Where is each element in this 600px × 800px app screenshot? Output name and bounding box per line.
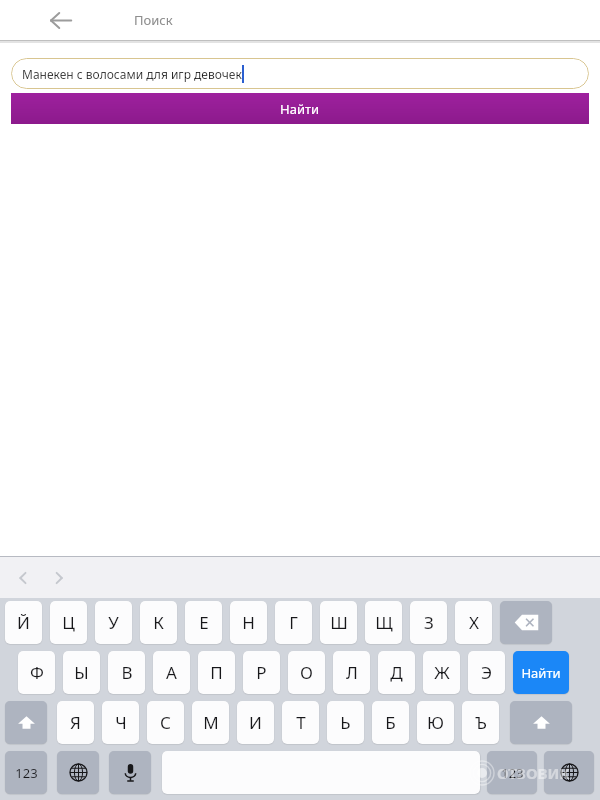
staticText: В xyxy=(121,661,133,684)
button[interactable]: Щ xyxy=(365,601,402,644)
button[interactable]: Ю xyxy=(417,701,454,744)
staticText: К xyxy=(153,611,164,634)
staticText: И xyxy=(249,711,262,734)
button[interactable]: Backspace xyxy=(500,601,552,644)
button[interactable]: Е xyxy=(185,601,222,644)
button[interactable]: Shift xyxy=(510,701,572,744)
button[interactable]: З xyxy=(410,601,447,644)
button[interactable]: Ф xyxy=(18,651,55,694)
button[interactable]: К xyxy=(140,601,177,644)
button[interactable]: О xyxy=(288,651,325,694)
staticText: Ы xyxy=(74,661,89,684)
button[interactable]: 123 xyxy=(5,751,47,794)
staticText: Ъ xyxy=(475,711,487,734)
button[interactable]: Р xyxy=(243,651,280,694)
staticText: Х xyxy=(469,611,479,634)
button[interactable]: В xyxy=(108,651,145,694)
button[interactable]: М xyxy=(192,701,229,744)
staticText: Э xyxy=(481,661,492,684)
staticText: Ц xyxy=(62,611,75,634)
button[interactable]: Ж xyxy=(423,651,460,694)
staticText: Д xyxy=(390,661,403,684)
button[interactable]: Г xyxy=(275,601,312,644)
staticText: П xyxy=(210,661,223,684)
staticText: Е xyxy=(199,611,209,634)
staticText: С xyxy=(160,711,171,734)
button[interactable]: И xyxy=(237,701,274,744)
staticText: Поиск xyxy=(134,11,173,29)
staticText: Т xyxy=(296,711,306,734)
button[interactable]: Д xyxy=(378,651,415,694)
staticText: Б xyxy=(385,711,396,734)
button[interactable]: Э xyxy=(468,651,505,694)
button[interactable]: Ъ xyxy=(462,701,499,744)
button[interactable]: Н xyxy=(230,601,267,644)
button[interactable]: Х xyxy=(455,601,492,644)
button[interactable]: Ь xyxy=(327,701,364,744)
staticText: Р xyxy=(256,661,267,684)
button[interactable]: Ц xyxy=(50,601,87,644)
staticText: З xyxy=(424,611,434,634)
button[interactable]: Previous field xyxy=(7,562,39,594)
staticText: 123 xyxy=(501,764,524,782)
staticText: А xyxy=(166,661,177,684)
staticText: Ш xyxy=(330,611,348,634)
button[interactable]: Voice input xyxy=(109,751,151,794)
staticText: Найти xyxy=(521,664,561,682)
staticText: О xyxy=(300,661,313,684)
button[interactable]: Change keyboard xyxy=(57,751,99,794)
button[interactable]: Б xyxy=(372,701,409,744)
button[interactable]: Next field xyxy=(43,562,75,594)
button[interactable]: Манекен с волосами для игр девочек xyxy=(11,58,589,89)
button[interactable]: Shift xyxy=(5,701,47,744)
button[interactable]: Ч xyxy=(102,701,139,744)
staticText: Ь xyxy=(340,711,351,734)
button[interactable]: Й xyxy=(5,601,42,644)
staticText: М xyxy=(203,711,219,734)
button[interactable]: А xyxy=(153,651,190,694)
staticText: Я xyxy=(70,711,81,734)
button[interactable]: У xyxy=(95,601,132,644)
staticText: Ю xyxy=(427,711,444,734)
staticText: Л xyxy=(346,661,358,684)
staticText: Ж xyxy=(434,661,450,684)
button[interactable]: Back xyxy=(41,1,79,39)
staticText: У xyxy=(108,611,119,634)
staticText: Н xyxy=(242,611,255,634)
staticText: Ф xyxy=(30,661,44,684)
staticText: 123 xyxy=(15,764,38,782)
button[interactable]: Л xyxy=(333,651,370,694)
button[interactable]: Ы xyxy=(63,651,100,694)
staticText: Й xyxy=(17,611,30,634)
staticText: Щ xyxy=(375,611,393,634)
staticText: Манекен с волосами для игр девочек xyxy=(22,66,242,82)
staticText: Г xyxy=(289,611,298,634)
button[interactable]: Я xyxy=(57,701,94,744)
button[interactable]: Найти xyxy=(11,93,589,124)
staticText: Ч xyxy=(115,711,127,734)
button[interactable]: Emoji xyxy=(544,751,594,794)
button[interactable]: С xyxy=(147,701,184,744)
button[interactable]: Найти xyxy=(513,651,569,694)
staticText: ОТЗОВИК xyxy=(497,763,570,783)
button[interactable]: П xyxy=(198,651,235,694)
button[interactable]: 123 xyxy=(487,751,537,794)
button[interactable]: Ш xyxy=(320,601,357,644)
staticText: Найти xyxy=(280,100,320,118)
button[interactable]: Т xyxy=(282,701,319,744)
